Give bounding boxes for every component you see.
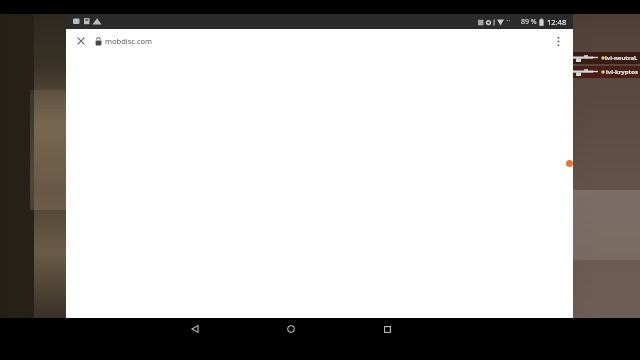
button[interactable]: Close <box>71 31 91 51</box>
staticText: ivi-neutraL <box>605 54 638 62</box>
button[interactable]: Back <box>167 318 223 340</box>
staticText: mobdisc.com <box>105 36 153 46</box>
button[interactable]: More options <box>548 31 568 51</box>
button[interactable]: Home <box>263 318 319 340</box>
staticText: 12:48 <box>547 17 567 27</box>
staticText: ivi-kryptos <box>606 68 638 76</box>
button[interactable]: mobdisc.com <box>95 31 548 51</box>
staticText: 89 % <box>521 17 537 27</box>
button[interactable]: Recent apps <box>359 318 415 340</box>
